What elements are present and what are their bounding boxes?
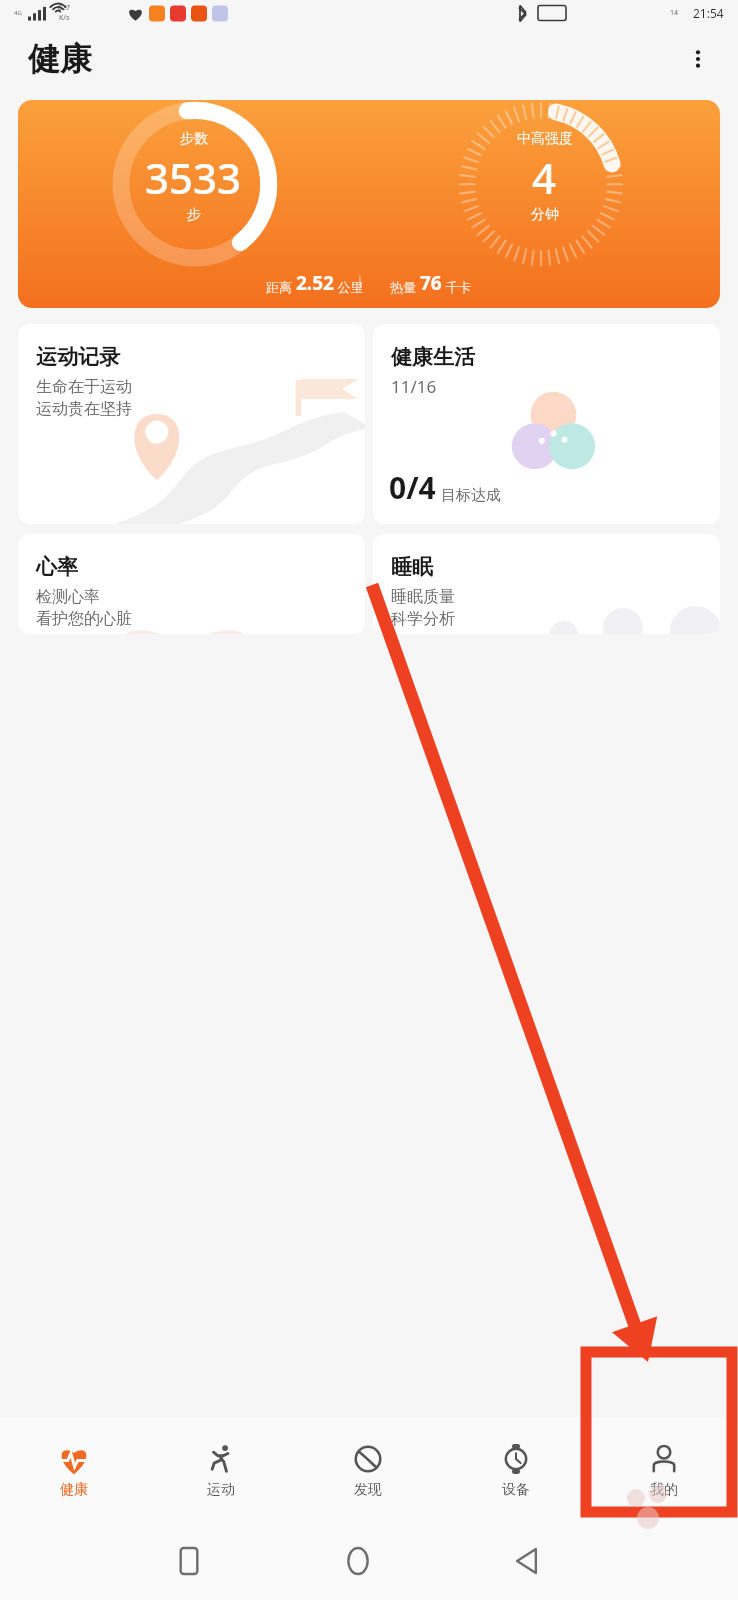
staticText: 运动记录 — [36, 344, 120, 370]
staticText: K/s — [59, 13, 70, 23]
staticText: 4 — [532, 149, 557, 206]
staticText: 3533 — [145, 149, 242, 206]
staticText: 健康 — [28, 39, 92, 79]
staticText: 627 — [58, 3, 71, 13]
staticText: 运动 — [207, 1481, 235, 1499]
button[interactable]: 发现 — [294, 1418, 442, 1522]
button[interactable]: 睡眠 — [373, 534, 720, 634]
button[interactable]: Recent apps — [104, 1522, 273, 1600]
staticText: 生命在于运动 — [36, 377, 132, 397]
staticText: 4G — [14, 9, 22, 17]
button[interactable]: 运动记录 — [18, 324, 365, 524]
staticText: 距离 — [266, 278, 296, 296]
staticText: 0/4 — [389, 467, 436, 508]
button[interactable]: Back — [442, 1522, 611, 1600]
staticText: 中高强度 — [517, 130, 573, 148]
staticText: 我的 — [650, 1481, 678, 1499]
staticText: 检测心率 — [36, 587, 100, 607]
button[interactable]: 心率 — [18, 534, 365, 634]
staticText: 21:54 — [693, 5, 724, 21]
button[interactable]: 设备 — [442, 1418, 590, 1522]
staticText: 千卡 — [442, 278, 472, 296]
staticText: 睡眠质量 — [391, 587, 455, 607]
staticText: 2.52 — [296, 270, 334, 296]
staticText: 发现 — [354, 1481, 382, 1499]
button[interactable]: 步数 — [18, 100, 720, 308]
button[interactable]: 运动 — [147, 1418, 294, 1522]
staticText: 运动贵在坚持 — [36, 399, 132, 419]
staticText: 健康 — [60, 1481, 88, 1499]
staticText: 步 — [187, 206, 201, 224]
button[interactable]: Home — [273, 1522, 442, 1600]
staticText: 心率 — [36, 554, 78, 580]
button[interactable]: 健康 — [0, 1418, 147, 1522]
staticText: 健康生活 — [391, 344, 475, 370]
staticText: 目标达成 — [441, 486, 501, 505]
staticText: 76 — [420, 270, 442, 296]
staticText: 11/16 — [391, 375, 437, 398]
staticText: 设备 — [502, 1481, 530, 1499]
staticText: 热量 — [390, 278, 420, 296]
staticText: 步数 — [180, 130, 208, 148]
staticText: 看护您的心脏 — [36, 609, 132, 629]
button[interactable]: 我的 — [590, 1418, 738, 1522]
staticText: 公里 — [334, 278, 364, 296]
button[interactable]: 健康生活 — [373, 324, 720, 524]
staticText: 睡眠 — [391, 554, 433, 580]
staticText: 科学分析 — [391, 609, 455, 629]
staticText: 分钟 — [531, 206, 559, 224]
button[interactable]: More options — [676, 37, 720, 81]
staticText: 14 — [670, 8, 679, 18]
